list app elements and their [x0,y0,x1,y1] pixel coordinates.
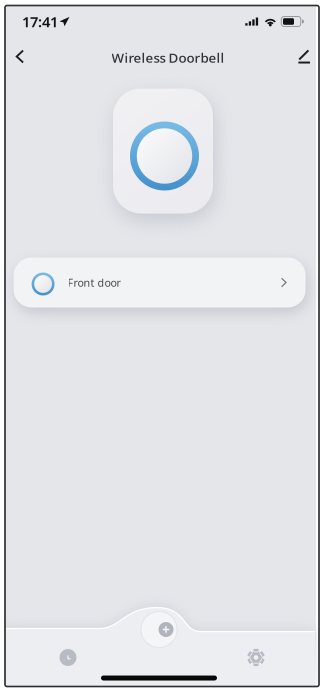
button[interactable]: Front door [14,257,306,307]
staticText: Wireless Doorbell [111,49,224,66]
button[interactable]: History [44,642,92,672]
staticText: 17:41 [22,12,58,31]
button[interactable]: Settings [232,642,280,672]
staticText: Front door [68,275,121,290]
button[interactable]: Add device [152,615,180,643]
button[interactable]: Edit [286,41,322,71]
button[interactable]: Back [2,41,38,71]
